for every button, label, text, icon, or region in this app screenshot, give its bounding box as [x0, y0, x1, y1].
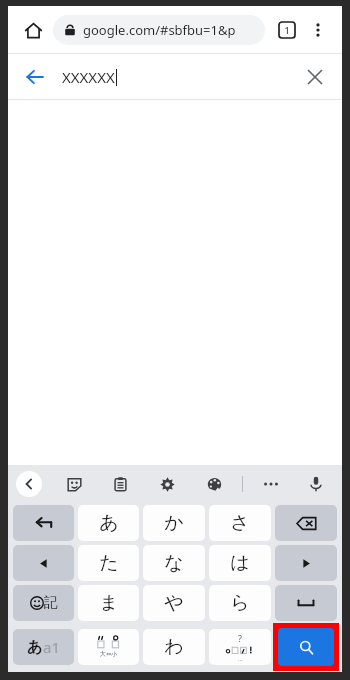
button[interactable]: ま [78, 585, 139, 621]
button[interactable]: か [143, 505, 205, 541]
staticText: さ [230, 511, 250, 535]
staticText: ... [238, 655, 243, 663]
staticText: 大⇔小 [100, 650, 118, 658]
staticText: google.com/#sbfbu=1&p [83, 21, 236, 39]
button[interactable]: Clipboard [107, 471, 133, 497]
button[interactable]: た [78, 545, 139, 581]
button[interactable]: Voice input [303, 471, 329, 497]
button[interactable]: Settings [154, 471, 180, 497]
button[interactable]: あ [78, 505, 139, 541]
button[interactable]: Emoji and symbols [13, 585, 74, 621]
button[interactable]: さ [209, 505, 271, 541]
staticText: ら [230, 591, 250, 615]
button[interactable]: Theme [201, 471, 227, 497]
staticText: a1 [43, 637, 60, 657]
staticText: ? [238, 632, 242, 644]
button[interactable]: More keyboard options [258, 471, 284, 497]
staticText: 記 [44, 594, 58, 612]
staticText: 1 [284, 24, 290, 36]
staticText: あ [27, 638, 43, 657]
staticText: は [230, 551, 250, 575]
button[interactable]: Punctuation [209, 629, 271, 665]
button[interactable]: Input mode [13, 629, 74, 665]
button[interactable]: Space [275, 585, 337, 621]
staticText: た [99, 551, 119, 575]
button[interactable]: Back [20, 62, 50, 92]
button[interactable]: な [143, 545, 205, 581]
button[interactable]: Dakuten [78, 629, 139, 665]
staticText: な [164, 551, 184, 575]
button[interactable]: More options [304, 16, 332, 44]
button[interactable]: Clear [300, 62, 330, 92]
staticText: XXXXXX [62, 67, 115, 87]
button[interactable]: Return [13, 505, 74, 541]
button[interactable]: ら [209, 585, 271, 621]
button[interactable]: google.com/#sbfbu=1&p [53, 15, 265, 45]
button[interactable]: Backspace [275, 505, 337, 541]
button[interactable]: Home [18, 15, 48, 45]
button[interactable]: Cursor right [275, 545, 337, 581]
button[interactable]: Tabs [273, 16, 301, 44]
staticText: ま [99, 591, 119, 615]
button[interactable]: わ [143, 629, 205, 665]
button[interactable]: や [143, 585, 205, 621]
staticText: わ [164, 635, 184, 659]
button[interactable]: Collapse toolbar [16, 471, 42, 497]
staticText: か [164, 511, 184, 535]
staticText: や [164, 591, 184, 615]
button[interactable]: Cursor left [13, 545, 74, 581]
staticText: あ [99, 511, 119, 535]
button[interactable]: Stickers [61, 471, 87, 497]
button[interactable]: Search [278, 628, 334, 666]
button[interactable]: は [209, 545, 271, 581]
